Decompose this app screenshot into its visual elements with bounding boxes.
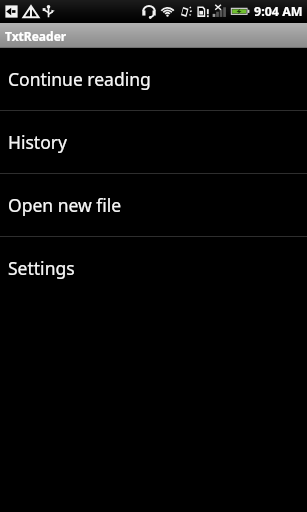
staticText: Settings <box>8 256 75 280</box>
button[interactable]: Open new file <box>0 174 307 236</box>
staticText: Open new file <box>8 193 122 217</box>
button[interactable]: History <box>0 111 307 173</box>
button[interactable]: Settings <box>0 237 307 299</box>
button[interactable]: Continue reading <box>0 48 307 110</box>
staticText: 9:04 AM <box>254 3 303 20</box>
staticText: History <box>8 130 67 154</box>
staticText: Continue reading <box>8 67 151 91</box>
staticText: TxtReader <box>5 28 67 44</box>
